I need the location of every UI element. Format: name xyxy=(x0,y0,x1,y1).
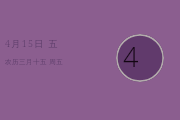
button[interactable]: Day 4 xyxy=(116,34,164,82)
staticText: 4 xyxy=(123,38,139,75)
staticText: 农历三月十五 周五 xyxy=(5,57,64,66)
staticText: 4月15日 五 xyxy=(5,37,59,49)
